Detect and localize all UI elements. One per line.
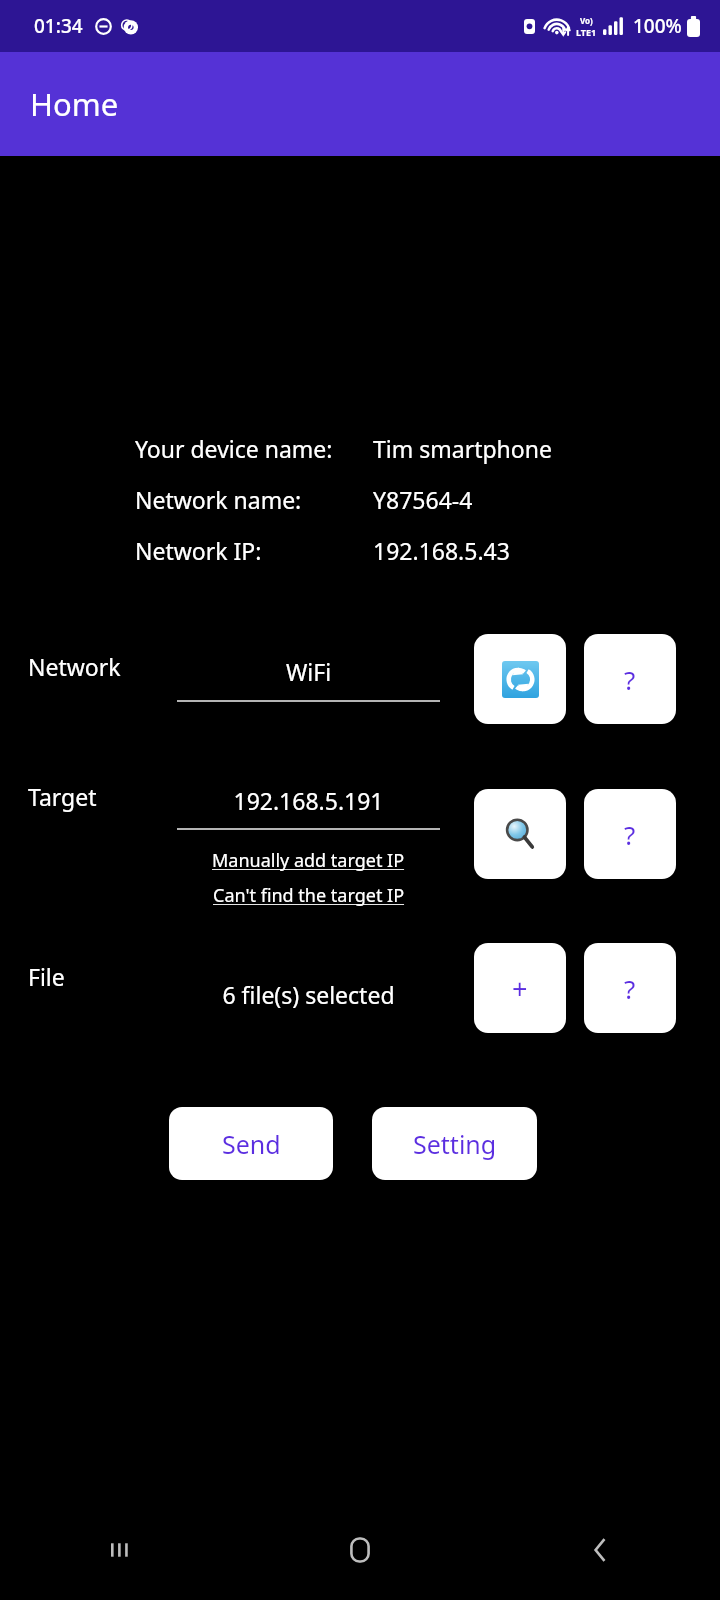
button[interactable]: Setting <box>372 1107 537 1180</box>
staticText: File <box>28 961 65 992</box>
staticText: 192.168.5.43 <box>373 535 510 566</box>
staticText: LTE1 <box>576 26 597 38</box>
staticText: Your device name: <box>135 433 373 464</box>
staticText: WiFi <box>177 656 440 687</box>
staticText: 6 file(s) selected <box>177 979 440 1010</box>
button[interactable]: Target help <box>584 789 676 879</box>
button[interactable]: Refresh network <box>474 634 566 724</box>
staticText: 192.168.5.191 <box>177 785 440 816</box>
button[interactable]: Home <box>330 1520 390 1580</box>
button[interactable]: Recent apps <box>90 1520 150 1580</box>
staticText: Setting <box>413 1127 497 1161</box>
staticText: Vo) <box>580 15 593 26</box>
staticText: ? <box>624 817 636 852</box>
staticText: Network IP: <box>135 535 373 566</box>
button[interactable]: Manually add target IP <box>212 848 405 873</box>
staticText: ? <box>624 971 636 1006</box>
button[interactable]: File help <box>584 943 676 1033</box>
staticText: + <box>512 970 528 1007</box>
button[interactable]: Back <box>570 1520 630 1580</box>
button[interactable]: Network help <box>584 634 676 724</box>
staticText: ? <box>624 662 636 697</box>
staticText: Home <box>30 83 119 125</box>
staticText: Network <box>28 651 121 682</box>
staticText: Network name: <box>135 484 373 515</box>
staticText: Tim smartphone <box>373 433 552 464</box>
staticText: Target <box>28 781 97 812</box>
button[interactable]: Send <box>169 1107 333 1180</box>
button[interactable]: Can't find the target IP <box>213 883 405 908</box>
staticText: Y87564-4 <box>373 484 473 515</box>
button[interactable]: Search for target <box>474 789 566 879</box>
staticText: 01:34 <box>34 13 83 39</box>
button[interactable]: Add files <box>474 943 566 1033</box>
staticText: Send <box>222 1127 281 1161</box>
staticText: 100% <box>633 13 682 39</box>
